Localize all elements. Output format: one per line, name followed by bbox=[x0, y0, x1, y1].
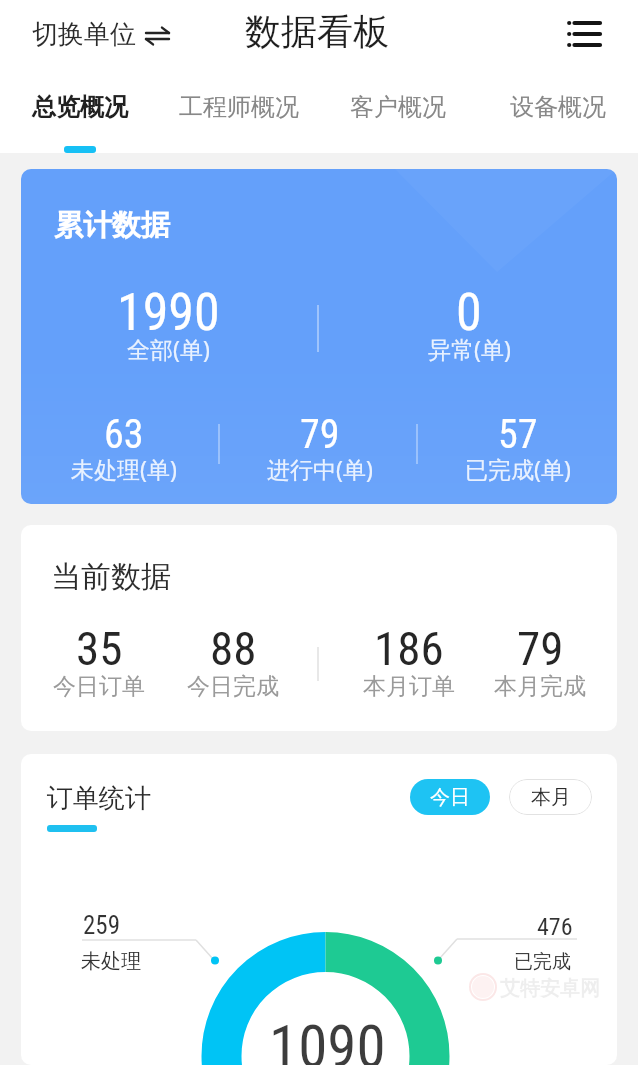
button[interactable]: 本月 bbox=[509, 779, 592, 815]
staticText: 全部(单) bbox=[127, 333, 210, 364]
staticText: 88 bbox=[210, 621, 257, 676]
button[interactable]: 工程师概况 bbox=[159, 78, 318, 153]
staticText: 已完成 bbox=[514, 950, 571, 974]
staticText: 本月 bbox=[531, 785, 571, 810]
staticText: 当前数据 bbox=[51, 558, 171, 596]
staticText: 未处理 bbox=[81, 949, 141, 974]
staticText: 今日订单 bbox=[53, 672, 145, 701]
button[interactable]: 当前数据 bbox=[21, 525, 617, 731]
staticText: 0 bbox=[456, 282, 482, 343]
staticText: 186 bbox=[374, 621, 444, 676]
button[interactable]: 客户概况 bbox=[318, 78, 478, 153]
staticText: 1990 bbox=[117, 282, 220, 343]
button[interactable]: 总览概况 bbox=[0, 78, 159, 153]
staticText: 工程师概况 bbox=[179, 92, 299, 122]
staticText: 今日完成 bbox=[187, 672, 279, 701]
staticText: 订单统计 bbox=[47, 782, 151, 815]
button[interactable]: Menu bbox=[557, 8, 609, 60]
staticText: 总览概况 bbox=[32, 92, 128, 122]
staticText: 客户概况 bbox=[350, 92, 446, 122]
staticText: 累计数据 bbox=[54, 207, 170, 244]
button[interactable]: 今日 bbox=[410, 779, 490, 815]
staticText: 已完成(单) bbox=[465, 453, 571, 484]
staticText: 今日 bbox=[430, 785, 470, 810]
staticText: 本月订单 bbox=[363, 672, 455, 701]
button[interactable]: 切换单位 bbox=[26, 12, 178, 56]
staticText: 79 bbox=[517, 621, 564, 676]
staticText: 63 bbox=[104, 411, 144, 458]
staticText: 476 bbox=[537, 913, 573, 941]
staticText: 数据看板 bbox=[245, 9, 389, 54]
staticText: 1090 bbox=[269, 1012, 386, 1065]
staticText: 本月完成 bbox=[494, 672, 586, 701]
staticText: 艾特安卓网 bbox=[500, 976, 600, 1001]
staticText: 35 bbox=[76, 621, 123, 676]
staticText: 57 bbox=[498, 411, 538, 458]
staticText: 79 bbox=[300, 411, 340, 458]
button[interactable]: 设备概况 bbox=[478, 78, 638, 153]
staticText: 未处理(单) bbox=[71, 453, 177, 484]
staticText: 切换单位 bbox=[32, 18, 136, 51]
staticText: 259 bbox=[83, 911, 121, 940]
staticText: 进行中(单) bbox=[267, 453, 373, 484]
button[interactable]: 累计数据 bbox=[21, 169, 617, 504]
staticText: 设备概况 bbox=[510, 92, 606, 122]
staticText: 异常(单) bbox=[428, 333, 511, 364]
